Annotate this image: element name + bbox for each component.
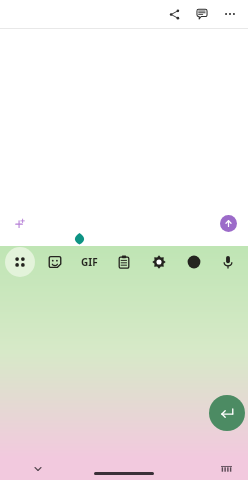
button[interactable]: Apps (5, 247, 35, 277)
button[interactable]: Theme (179, 247, 209, 277)
button[interactable]: Settings (144, 247, 174, 277)
button[interactable]: Expand (220, 215, 237, 232)
button[interactable]: Enter (209, 395, 245, 431)
button[interactable]: Comments (190, 2, 214, 26)
button[interactable]: Hide keyboard (28, 459, 48, 479)
button[interactable]: Expand (5, 204, 243, 242)
button[interactable]: Share (162, 2, 186, 26)
button[interactable]: Clipboard (109, 247, 139, 277)
staticText: GIF (81, 255, 98, 269)
button[interactable]: GIF (74, 247, 104, 277)
button[interactable]: Voice input (213, 247, 243, 277)
button[interactable]: Stickers (40, 247, 70, 277)
button[interactable]: Switch keyboard (216, 459, 236, 479)
button[interactable]: More options (218, 2, 242, 26)
